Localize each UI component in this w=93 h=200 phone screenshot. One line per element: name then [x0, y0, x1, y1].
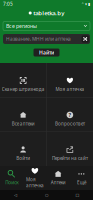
button[interactable]: Поиск	[0, 170, 23, 186]
staticText: Все аптеки	[12, 121, 35, 127]
staticText: Поиск	[5, 179, 18, 186]
staticText: Моя аптечка	[55, 86, 84, 92]
staticText: 7:05	[3, 1, 13, 7]
button[interactable]: Перейти на сайт	[47, 132, 93, 166]
button[interactable]: Сканировать штрих-код	[82, 35, 89, 43]
staticText: Все регионы	[6, 22, 37, 30]
button[interactable]: Назад	[0, 193, 31, 197]
button[interactable]: Домой	[31, 193, 62, 197]
staticText: Название, МНН или аптека	[6, 36, 71, 42]
staticText: Перейти на сайт	[52, 155, 88, 161]
staticText: Сканер штрих-кода	[2, 86, 45, 92]
staticText: ◁	[14, 193, 17, 197]
staticText: Аптеки	[51, 179, 66, 186]
button[interactable]: Все аптеки	[0, 97, 46, 131]
staticText: Вопрос-ответ	[55, 121, 85, 127]
button[interactable]: Ещё	[70, 170, 93, 186]
button[interactable]: Войти	[0, 132, 46, 166]
staticText: tabletka.by	[33, 9, 64, 17]
staticText: ?	[68, 111, 71, 118]
staticText: Войти	[16, 155, 30, 161]
button[interactable]: Моя аптечка	[47, 63, 93, 97]
staticText: ○	[45, 193, 48, 197]
button[interactable]: Аптеки	[46, 170, 70, 186]
button[interactable]: Все регионы	[3, 21, 90, 30]
button[interactable]: ?	[47, 97, 93, 131]
staticText: Найти	[39, 49, 54, 56]
staticText: Моя аптечка	[26, 176, 44, 189]
staticText: ⌃ ▾ ▮	[81, 2, 90, 6]
staticText: □	[75, 193, 79, 197]
button[interactable]: Сканер штрих-кода	[0, 63, 46, 97]
staticText: Ещё	[77, 179, 86, 186]
button[interactable]: Найти	[33, 48, 59, 56]
button[interactable]: Моя аптечка	[23, 167, 46, 189]
button[interactable]: Недавние	[62, 193, 93, 197]
